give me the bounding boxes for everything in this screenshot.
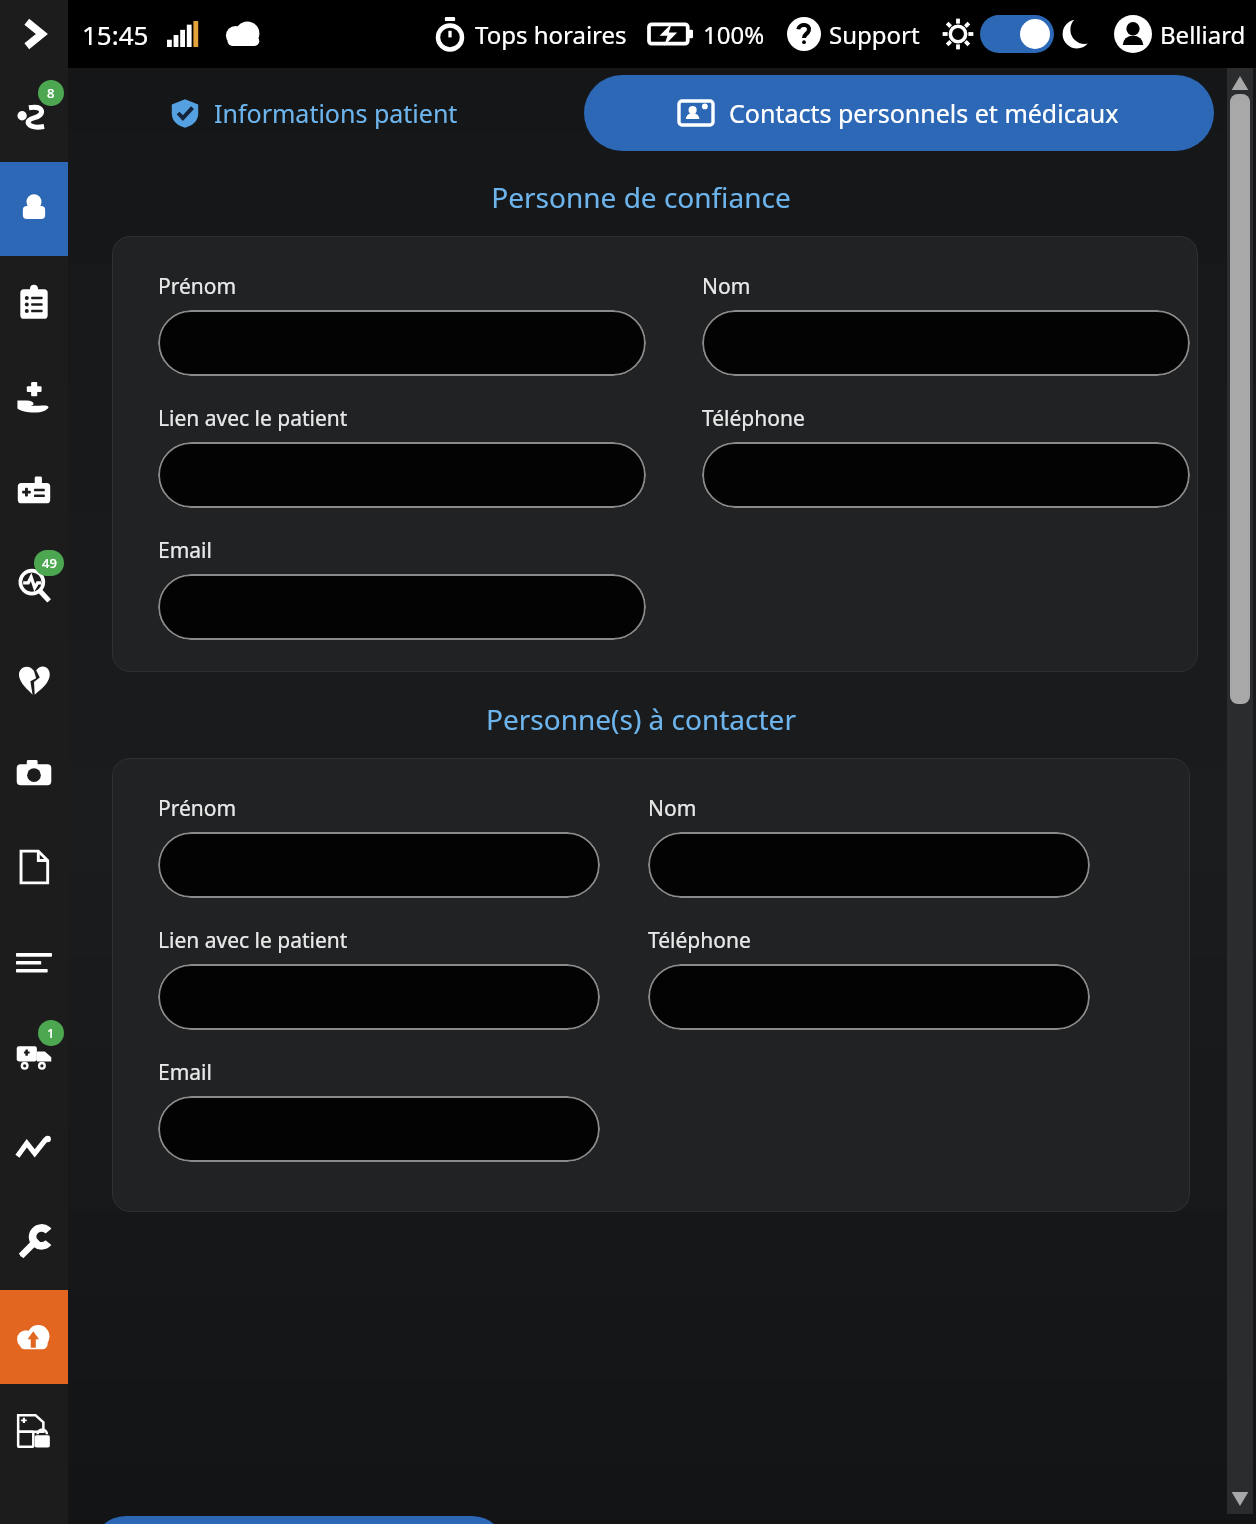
button[interactable] <box>158 574 646 640</box>
staticText: 100% <box>703 18 765 51</box>
staticText: Contacts personnels et médicaux <box>729 96 1119 130</box>
button[interactable]: Tournée <box>0 68 68 162</box>
button[interactable] <box>648 832 1090 898</box>
button[interactable] <box>158 310 646 376</box>
staticText: 15:45 <box>82 17 149 52</box>
staticText: Lien avec le patient <box>158 926 348 955</box>
button[interactable]: Identité <box>0 444 68 538</box>
staticText: Prénom <box>158 272 237 301</box>
button[interactable]: Réglages <box>0 1196 68 1290</box>
staticText: 8 <box>47 84 55 102</box>
staticText: Belliard <box>1160 18 1246 51</box>
staticText: Email <box>158 536 212 565</box>
staticText: Téléphone <box>648 926 751 955</box>
button[interactable]: Bilan <box>0 256 68 350</box>
staticText: Tops horaires <box>475 18 627 51</box>
button[interactable]: Documents <box>0 820 68 914</box>
button[interactable]: Informations patient <box>156 86 472 140</box>
button[interactable] <box>158 964 600 1030</box>
button[interactable]: Cardio <box>0 632 68 726</box>
staticText: Prénom <box>158 794 237 823</box>
staticText: 1 <box>47 1024 55 1042</box>
button[interactable]: Mode sombre <box>980 15 1054 53</box>
button[interactable]: Dossier sécurisé <box>0 1384 68 1478</box>
staticText: Email <box>158 1058 212 1087</box>
button[interactable]: Statistiques <box>0 1102 68 1196</box>
staticText: 49 <box>42 554 57 572</box>
staticText: Nom <box>702 272 751 301</box>
staticText: Personne de confiance <box>68 178 1214 216</box>
button[interactable]: Transport <box>0 1008 68 1102</box>
button[interactable]: Notes <box>0 914 68 1008</box>
button[interactable]: Contacts personnels et médicaux <box>584 75 1214 151</box>
button[interactable]: Photos <box>0 726 68 820</box>
button[interactable]: Constantes <box>0 538 68 632</box>
button[interactable] <box>158 832 600 898</box>
button[interactable]: Envoyer <box>0 1290 68 1384</box>
staticText: Lien avec le patient <box>158 404 348 433</box>
button[interactable]: Barre de défilement <box>1230 94 1250 704</box>
button[interactable]: Support <box>787 17 920 51</box>
button[interactable]: Changer de patient <box>92 1516 506 1524</box>
staticText: Personne(s) à contacter <box>68 700 1214 738</box>
button[interactable] <box>702 310 1190 376</box>
staticText: Téléphone <box>702 404 805 433</box>
button[interactable] <box>648 964 1090 1030</box>
staticText: Support <box>829 18 920 51</box>
button[interactable] <box>158 442 646 508</box>
button[interactable]: Soins <box>0 350 68 444</box>
button[interactable]: Patient <box>0 162 68 256</box>
staticText: Informations patient <box>214 96 458 130</box>
button[interactable]: Ouvrir le menu <box>0 0 68 68</box>
staticText: Nom <box>648 794 697 823</box>
button[interactable] <box>158 1096 600 1162</box>
button[interactable] <box>702 442 1190 508</box>
